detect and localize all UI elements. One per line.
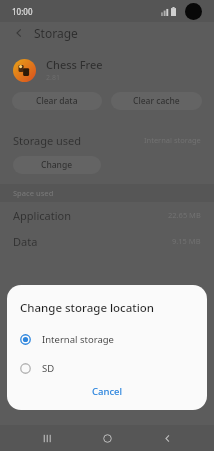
staticText: Clear cache (133, 95, 180, 107)
staticText: 22.65 MB (168, 210, 201, 220)
button[interactable]: Back (154, 425, 180, 451)
staticText: Application (13, 208, 71, 223)
button[interactable]: Clear data (12, 92, 102, 110)
button[interactable]: Cancel (78, 382, 137, 401)
button[interactable]: Back (8, 22, 30, 44)
button[interactable]: Application (0, 202, 214, 228)
button[interactable]: Recents (34, 425, 60, 451)
staticText: Chess Free (46, 57, 103, 72)
staticText: 9.15 MB (172, 236, 201, 246)
staticText: SD (42, 362, 55, 375)
button[interactable]: Data (0, 228, 214, 254)
staticText: Space used (13, 188, 54, 198)
staticText: Storage (34, 25, 78, 41)
button[interactable]: Storage used (0, 128, 214, 152)
button[interactable]: SD (7, 358, 207, 378)
staticText: Change (41, 159, 73, 171)
staticText: Data (13, 234, 38, 249)
button[interactable]: Change (13, 156, 101, 174)
button[interactable]: Clear cache (111, 92, 202, 110)
staticText: Clear data (36, 95, 78, 107)
button[interactable]: Internal storage (7, 329, 207, 349)
staticText: Cancel (92, 385, 123, 398)
staticText: 10:00 (12, 6, 33, 17)
staticText: Internal storage (42, 333, 114, 346)
staticText: Change storage location (20, 300, 155, 316)
staticText: Storage used (13, 133, 82, 148)
staticText: 2.81 (46, 73, 60, 83)
button[interactable]: Home (94, 425, 120, 451)
staticText: Internal storage (144, 135, 201, 145)
